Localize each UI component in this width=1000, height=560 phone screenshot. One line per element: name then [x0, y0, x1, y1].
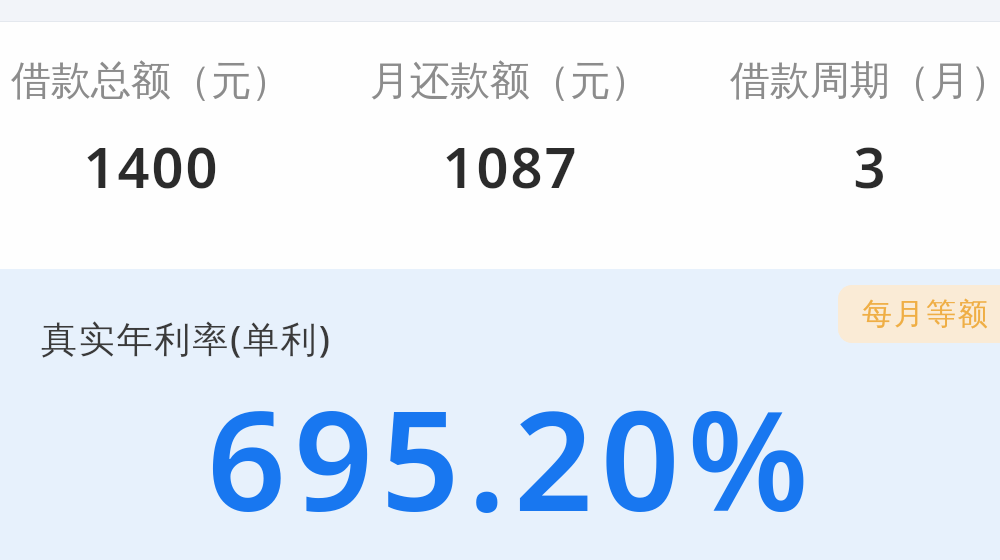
staticText: 695.20%: [207, 363, 817, 551]
staticText: 1087: [442, 128, 579, 204]
button[interactable]: 借款周期（月）: [690, 32, 1000, 242]
staticText: 月还款额（元）: [370, 55, 650, 105]
button[interactable]: 借款总额（元）: [0, 32, 331, 242]
staticText: 3: [853, 128, 888, 204]
button[interactable]: 每月等额 还款方式: [838, 285, 1000, 343]
staticText: 真实年利率(单利): [41, 314, 332, 363]
staticText: 每月等额: [861, 295, 989, 333]
staticText: 借款周期（月）: [730, 55, 1000, 105]
button[interactable]: 月还款额（元）: [330, 32, 690, 242]
staticText: 借款总额（元）: [11, 55, 291, 105]
staticText: 1400: [83, 128, 220, 204]
